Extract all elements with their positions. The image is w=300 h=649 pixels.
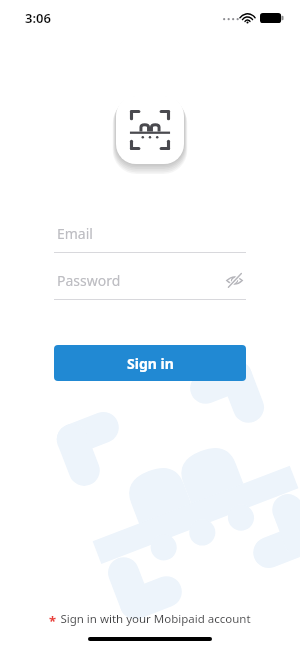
button[interactable]: Show password [222, 268, 246, 292]
staticText: Sign in with your Mobipaid account [60, 611, 251, 627]
button[interactable]: Sign in [54, 345, 246, 381]
staticText: * [49, 612, 57, 630]
button[interactable]: Password [57, 271, 121, 290]
staticText: Sign in [127, 354, 174, 373]
button[interactable]: Email [54, 216, 246, 253]
button[interactable]: * [49, 610, 251, 628]
staticText: Email [57, 224, 93, 243]
staticText: 3:06 [25, 9, 51, 27]
